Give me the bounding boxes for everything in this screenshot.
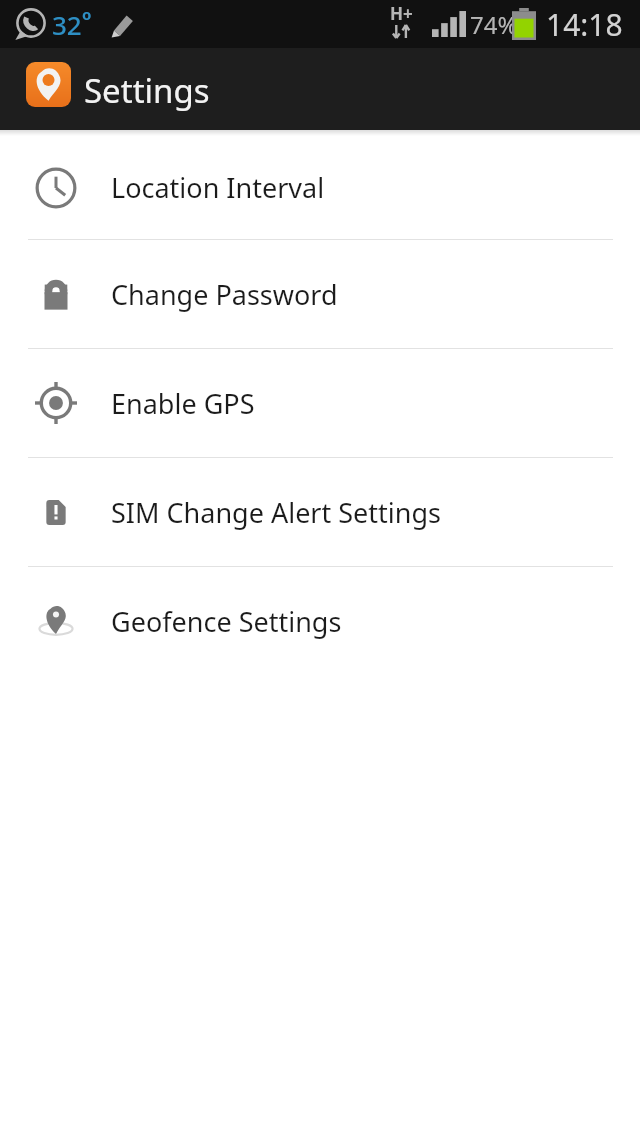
- staticText: Enable GPS: [111, 385, 255, 422]
- staticText: 74%: [470, 8, 518, 41]
- staticText: Location Interval: [111, 169, 325, 206]
- staticText: Settings: [84, 68, 210, 113]
- staticText: H+: [390, 2, 413, 25]
- button[interactable]: Change Password: [0, 240, 640, 348]
- staticText: 32: [52, 7, 82, 42]
- button[interactable]: Enable GPS: [0, 349, 640, 457]
- staticText: o: [82, 4, 92, 24]
- button[interactable]: App icon: [26, 62, 71, 107]
- staticText: Geofence Settings: [111, 603, 342, 640]
- staticText: SIM Change Alert Settings: [111, 494, 442, 531]
- button[interactable]: Geofence Settings: [0, 567, 640, 675]
- button[interactable]: SIM Change Alert Settings: [0, 458, 640, 566]
- staticText: 14:18: [546, 4, 623, 45]
- staticText: Change Password: [111, 276, 338, 313]
- button[interactable]: Location Interval: [0, 136, 640, 239]
